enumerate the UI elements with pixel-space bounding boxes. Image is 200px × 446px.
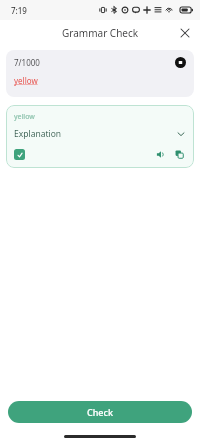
other: Expand explanation [176, 129, 186, 139]
button[interactable]: Check [8, 401, 192, 423]
button[interactable]: Explanation [14, 128, 186, 140]
button[interactable]: Copy [172, 147, 186, 161]
staticText: 7:19 [11, 5, 27, 16]
button[interactable]: Apply correction [14, 149, 25, 160]
button[interactable]: Clear text [175, 57, 186, 68]
staticText: Grammar Check [62, 26, 139, 40]
staticText: yellow [14, 112, 35, 122]
staticText: yellow [14, 75, 38, 86]
button[interactable]: 7/1000 [6, 50, 194, 97]
button[interactable]: Close [176, 24, 194, 42]
staticText: Check [87, 406, 113, 418]
staticText: Explanation [14, 128, 62, 140]
staticText: 7/1000 [14, 57, 40, 68]
button[interactable]: Listen [153, 147, 167, 161]
